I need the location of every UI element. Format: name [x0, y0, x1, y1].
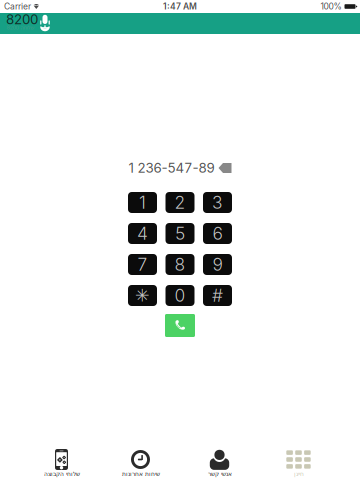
button[interactable]: 8: [165, 254, 194, 275]
staticText: שלוחי הקבוצה: [43, 471, 79, 477]
button[interactable]: Delete: [218, 163, 231, 173]
button[interactable]: 6: [203, 223, 232, 244]
staticText: 5: [175, 223, 185, 244]
button[interactable]: 4: [128, 223, 157, 244]
staticText: Carrier: [4, 1, 31, 12]
staticText: 0: [174, 285, 185, 306]
staticText: 8: [174, 254, 185, 275]
button[interactable]: 5: [165, 223, 194, 244]
button[interactable]: 0: [165, 285, 194, 306]
button[interactable]: 3: [203, 192, 232, 213]
staticText: שלוחה 8200: [6, 24, 34, 31]
staticText: ✳: [135, 285, 150, 306]
button[interactable]: 7: [128, 254, 157, 275]
button[interactable]: Call: [165, 314, 195, 337]
staticText: 7: [137, 254, 147, 275]
staticText: #: [212, 285, 223, 306]
staticText: 8200: [6, 11, 38, 27]
staticText: שיחות אחרונות: [121, 471, 159, 477]
button[interactable]: שיחות אחרונות: [101, 434, 180, 480]
staticText: 4: [137, 223, 148, 244]
button[interactable]: חייגן: [259, 434, 338, 480]
button[interactable]: אנשי קשר: [180, 434, 259, 480]
staticText: 6: [212, 223, 222, 244]
button[interactable]: 1: [128, 192, 157, 213]
staticText: 1: [139, 192, 146, 213]
button[interactable]: שלוחי הקבוצה: [22, 434, 101, 480]
button[interactable]: 2: [165, 192, 194, 213]
staticText: 9: [212, 254, 222, 275]
staticText: 1:47 AM: [163, 1, 197, 12]
staticText: 1 236-547-89: [128, 160, 214, 176]
staticText: 3: [212, 192, 223, 213]
button[interactable]: 9: [203, 254, 232, 275]
staticText: חייגן: [293, 471, 303, 477]
staticText: 100%: [320, 1, 341, 12]
staticText: אנשי קשר: [207, 471, 231, 477]
button[interactable]: ✳: [128, 285, 157, 306]
button[interactable]: #: [203, 285, 232, 306]
button[interactable]: 8200: [0, 13, 360, 34]
staticText: 2: [174, 192, 185, 213]
